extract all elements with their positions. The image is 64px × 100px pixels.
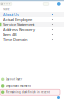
button[interactable]: Actual Employee	[0, 17, 64, 22]
staticText: Lay out layer	[6, 77, 22, 81]
staticText: Remaining dark finish in recent	[6, 90, 50, 94]
staticText: Item 4B	[3, 32, 17, 37]
staticText: Time Domain	[3, 37, 27, 42]
button[interactable]: Tab	[43, 2, 49, 5]
button[interactable]: Item 4B	[0, 32, 64, 37]
button[interactable]: Address Recovery	[0, 27, 64, 32]
button[interactable]: Important moment	[0, 83, 60, 89]
staticText: Name	[3, 7, 10, 11]
button[interactable]: Lay out layer	[0, 76, 60, 83]
staticText: Service Statement	[3, 22, 34, 27]
staticText: Actual Employee	[3, 17, 32, 22]
button[interactable]: Search	[0, 2, 12, 6]
button[interactable]: Time Domain	[0, 37, 64, 42]
button[interactable]: Service Statement	[0, 22, 64, 27]
staticText: Important moment	[6, 84, 31, 88]
staticText: About Us	[3, 12, 19, 17]
button[interactable]: Remaining dark finish in recent	[0, 89, 60, 95]
button[interactable]: About Us	[0, 12, 64, 17]
button[interactable]: Account	[57, 2, 61, 6]
staticText: Address Recovery	[3, 27, 35, 32]
button[interactable]: Help	[57, 96, 60, 99]
